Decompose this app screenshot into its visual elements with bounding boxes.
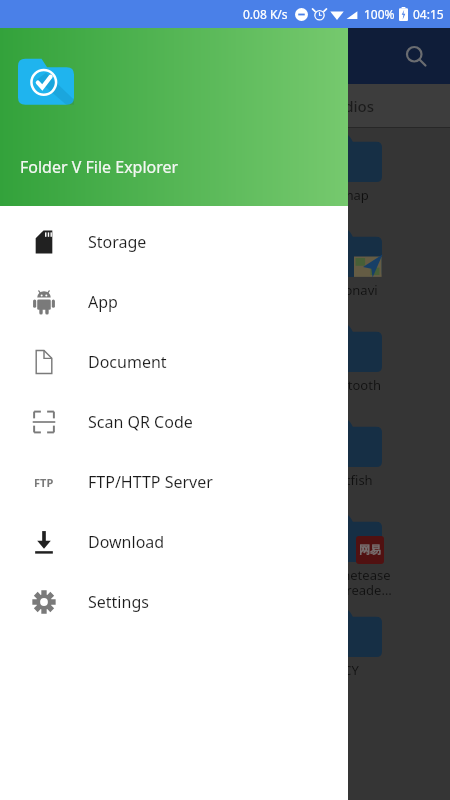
button[interactable]: Search — [396, 36, 436, 76]
button[interactable]: Audios — [250, 84, 450, 128]
staticText: FTP — [34, 475, 54, 490]
button[interactable]: y — [0, 318, 252, 413]
button[interactable]: Storage — [0, 212, 348, 272]
button[interactable]: y — [0, 508, 252, 603]
staticText: 100% — [364, 6, 395, 22]
staticText: com.netease .newsreade… — [311, 566, 392, 599]
button[interactable]: y — [0, 128, 252, 223]
button[interactable]: Document — [0, 332, 348, 392]
button[interactable]: Download — [0, 512, 348, 572]
button[interactable]: Settings — [0, 572, 348, 632]
staticText: App — [88, 291, 118, 313]
staticText: y — [245, 190, 252, 208]
button[interactable]: App — [0, 272, 348, 332]
staticText: Download — [88, 531, 165, 553]
staticText: amap — [334, 186, 369, 204]
button[interactable]: autonavi — [252, 223, 450, 318]
button[interactable]: CY — [252, 603, 450, 698]
staticText: Settings — [88, 591, 149, 613]
staticText: Catfish — [330, 471, 373, 489]
staticText: autonavi — [324, 281, 378, 299]
staticText: 04:15 — [413, 6, 444, 22]
button[interactable]: bluetooth — [252, 318, 450, 413]
button[interactable]: FTP — [0, 452, 348, 512]
staticText: Document — [88, 351, 167, 373]
staticText: FTP/HTTP Server — [88, 471, 213, 493]
staticText: bluetooth — [321, 376, 381, 394]
staticText: Storage — [88, 231, 147, 253]
staticText: Folder V File Explorer — [20, 156, 179, 178]
button[interactable]: y — [0, 223, 252, 318]
staticText: 0.08 K/s — [243, 6, 288, 22]
button[interactable]: y — [0, 603, 252, 698]
button[interactable]: Scan QR Code — [0, 392, 348, 452]
button[interactable]: y — [0, 413, 252, 508]
button[interactable]: 网易 — [252, 508, 450, 603]
staticText: CY — [343, 661, 359, 679]
staticText: 网易 — [359, 543, 381, 557]
button[interactable]: amap — [252, 128, 450, 223]
staticText: Scan QR Code — [88, 411, 193, 433]
button[interactable]: Catfish — [252, 413, 450, 508]
staticText: Audios — [325, 96, 375, 116]
